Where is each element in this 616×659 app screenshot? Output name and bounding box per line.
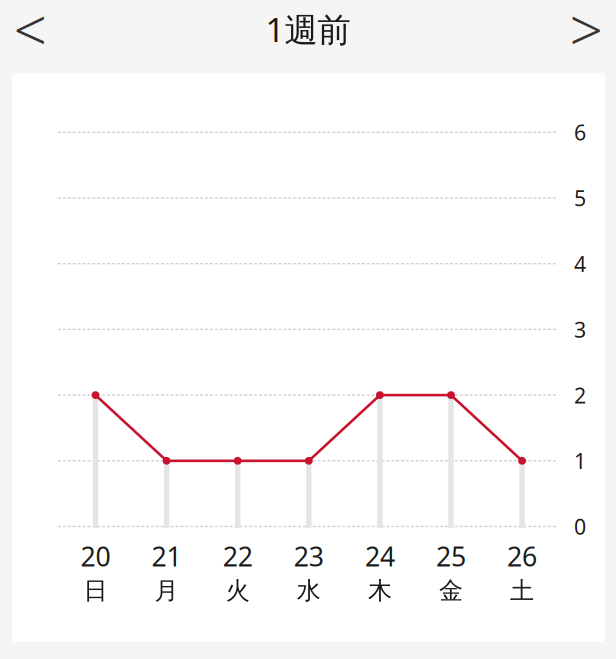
staticText: 21 <box>152 539 182 574</box>
staticText: 土 <box>510 576 534 605</box>
staticText: 6 <box>574 118 586 146</box>
button[interactable]: Next week <box>556 0 616 58</box>
button[interactable]: Previous week <box>0 0 60 58</box>
staticText: 23 <box>294 539 324 574</box>
staticText: 24 <box>365 539 395 574</box>
staticText: 水 <box>297 576 321 605</box>
staticText: 1週前 <box>265 7 350 51</box>
staticText: 22 <box>223 539 253 574</box>
staticText: > <box>569 0 602 68</box>
staticText: 3 <box>574 315 586 343</box>
staticText: 0 <box>574 512 586 541</box>
staticText: 木 <box>368 576 392 605</box>
staticText: 火 <box>226 576 250 605</box>
staticText: 20 <box>80 539 110 574</box>
staticText: 2 <box>574 381 586 409</box>
staticText: 金 <box>439 576 463 605</box>
staticText: 1 <box>574 447 586 475</box>
staticText: < <box>13 0 46 68</box>
staticText: 26 <box>507 539 537 574</box>
staticText: 月 <box>155 576 179 605</box>
staticText: 25 <box>436 539 466 574</box>
staticText: 5 <box>574 184 586 212</box>
staticText: 日 <box>83 576 107 605</box>
staticText: 4 <box>574 249 586 278</box>
